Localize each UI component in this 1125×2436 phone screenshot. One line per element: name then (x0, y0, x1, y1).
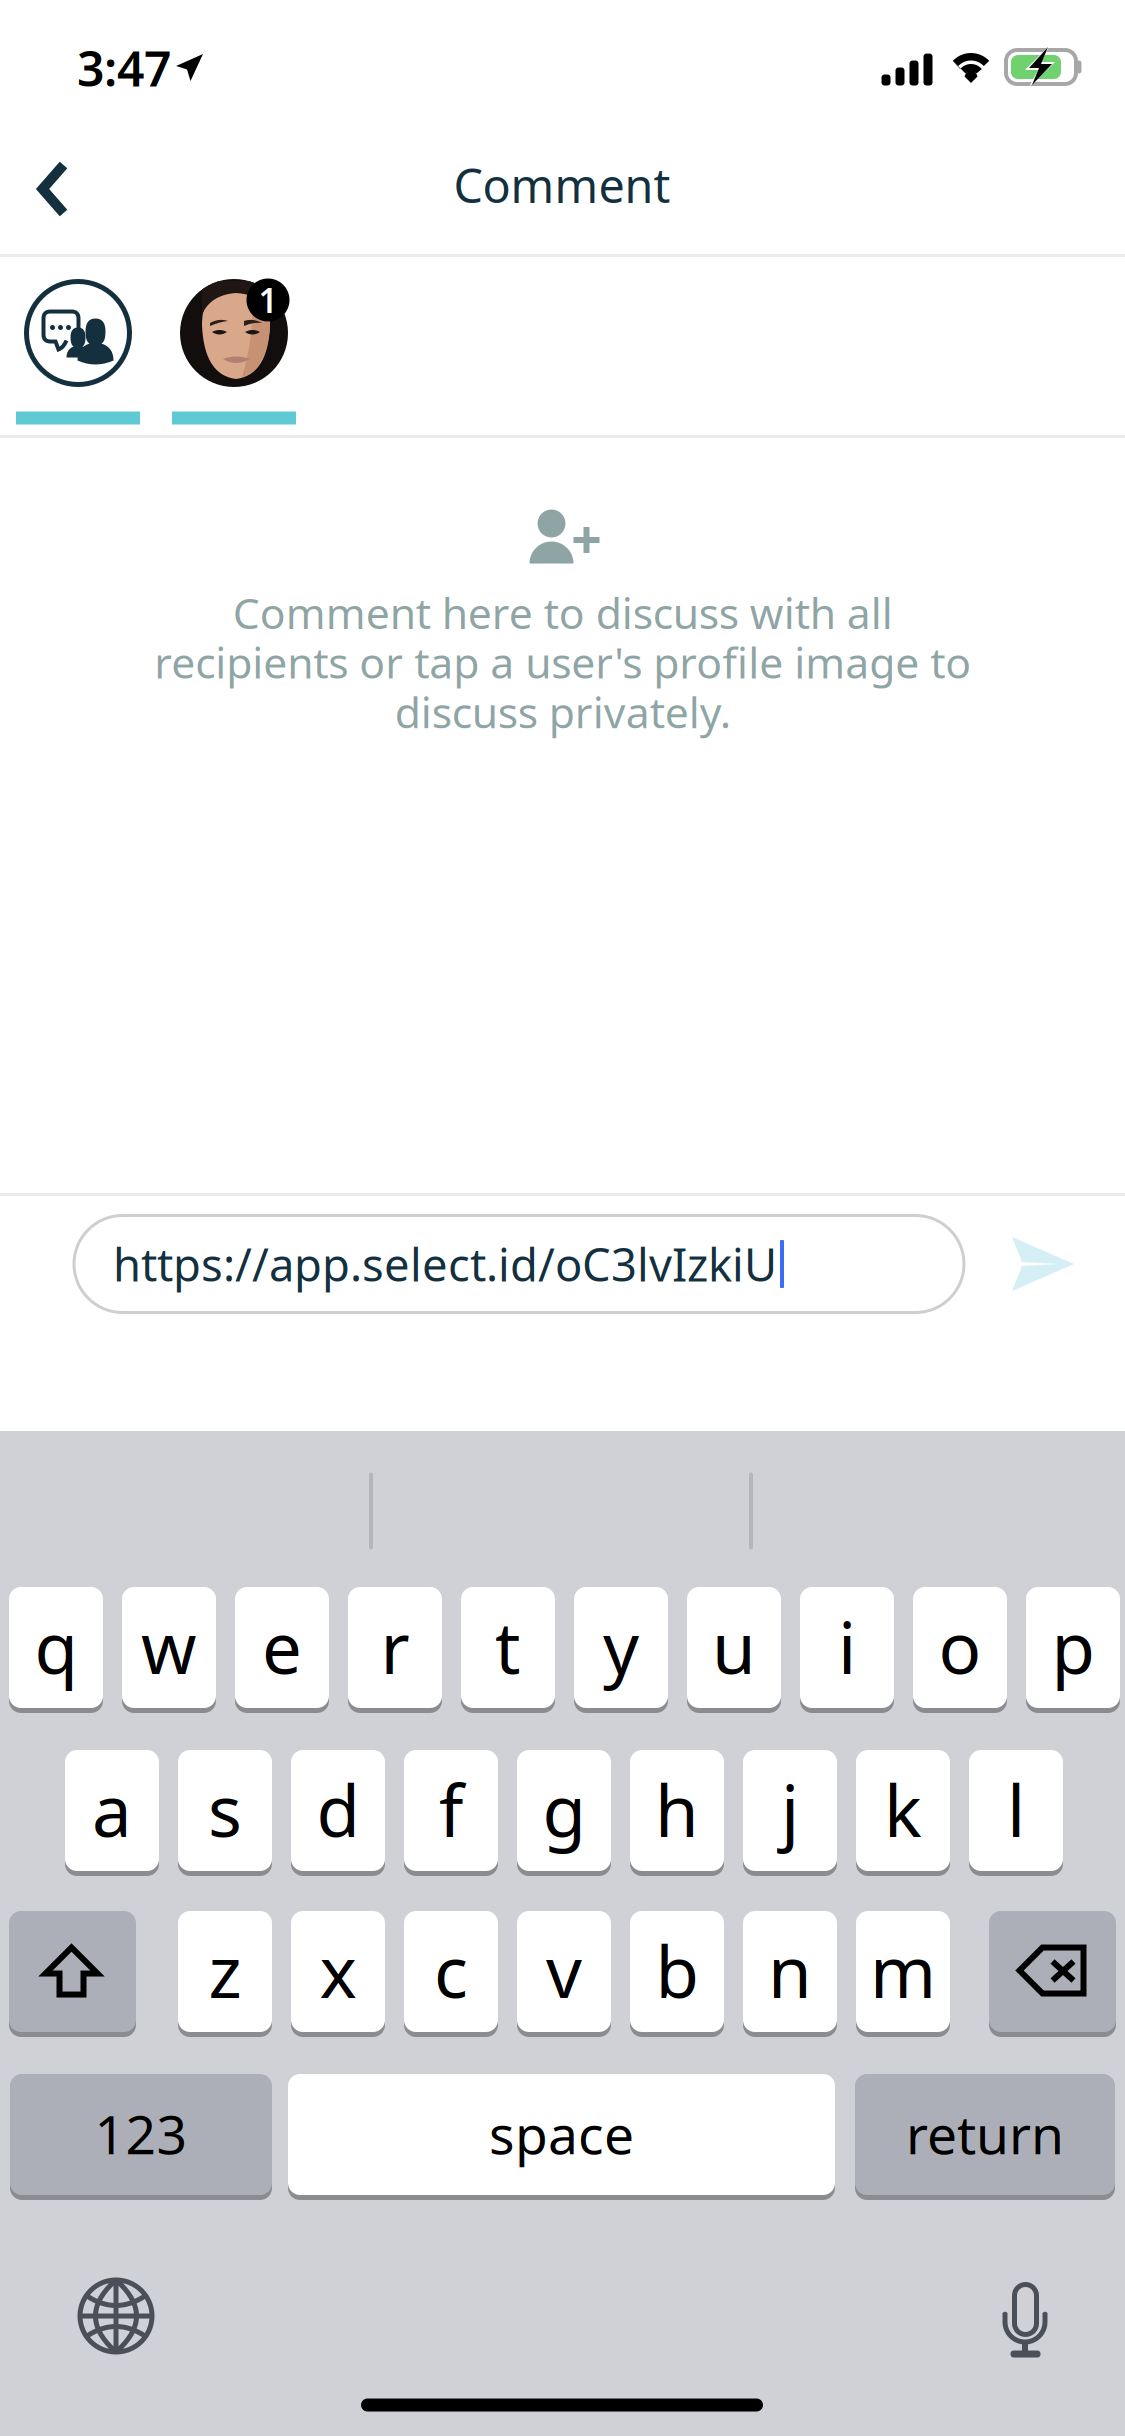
staticText: r (380, 1600, 409, 1693)
button[interactable]: t (461, 1587, 555, 1713)
button[interactable]: y (574, 1587, 668, 1713)
staticText: b (655, 1924, 698, 2017)
staticText: j (781, 1763, 799, 1856)
button[interactable]: https://app.select.id/oC3lvIzkiU (74, 1215, 964, 1312)
button[interactable]: h (630, 1750, 724, 1876)
staticText: u (712, 1600, 756, 1693)
staticText: e (262, 1600, 302, 1693)
button[interactable]: n (743, 1911, 837, 2037)
staticText: k (884, 1763, 922, 1856)
button[interactable]: d (291, 1750, 385, 1876)
button[interactable]: f (404, 1750, 498, 1876)
button[interactable]: Dictate (960, 2255, 1090, 2385)
button[interactable]: j (743, 1750, 837, 1876)
staticText: l (1007, 1763, 1025, 1856)
staticText: 123 (94, 2098, 187, 2169)
button[interactable]: l (969, 1750, 1063, 1876)
staticText: recipients or tap a user's profile image… (154, 634, 971, 690)
staticText: o (938, 1600, 981, 1693)
staticText: v (546, 1924, 582, 2017)
button[interactable]: q (9, 1587, 103, 1713)
button[interactable]: space (288, 2074, 835, 2200)
button[interactable]: e (235, 1587, 329, 1713)
staticText: return (906, 2098, 1064, 2169)
button[interactable]: a (65, 1750, 159, 1876)
staticText: a (92, 1763, 132, 1856)
staticText: h (655, 1763, 699, 1856)
button[interactable]: x (291, 1911, 385, 2037)
staticText: t (495, 1600, 521, 1693)
staticText: m (870, 1924, 936, 2017)
staticText: s (208, 1763, 242, 1856)
staticText: g (542, 1763, 585, 1856)
button[interactable]: o (913, 1587, 1007, 1713)
button[interactable]: r (348, 1587, 442, 1713)
staticText: z (208, 1924, 241, 2017)
button[interactable]: Next keyboard (51, 2251, 181, 2381)
staticText: f (439, 1763, 463, 1856)
button[interactable]: Back (0, 129, 113, 249)
staticText: n (768, 1924, 812, 2017)
button[interactable]: p (1026, 1587, 1120, 1713)
staticText: y (603, 1600, 639, 1693)
button[interactable]: k (856, 1750, 950, 1876)
button[interactable]: Everyone (7, 262, 149, 404)
staticText: d (316, 1763, 359, 1856)
button[interactable]: u (687, 1587, 781, 1713)
button[interactable]: z (178, 1911, 272, 2037)
button[interactable]: g (517, 1750, 611, 1876)
staticText: discuss privately. (394, 683, 730, 740)
staticText: 3:47 (77, 36, 171, 100)
staticText: Comment here to discuss with all (232, 584, 892, 641)
staticText: Comment (453, 154, 670, 216)
staticText: https://app.select.id/oC3lvIzkiU (113, 1234, 777, 1294)
staticText: w (141, 1600, 197, 1693)
button[interactable]: 123 (10, 2074, 272, 2200)
button[interactable]: i (800, 1587, 894, 1713)
button[interactable]: v (517, 1911, 611, 2037)
button[interactable]: return (855, 2074, 1115, 2200)
staticText: x (319, 1924, 356, 2017)
staticText: q (34, 1600, 77, 1693)
button[interactable]: Delete (989, 1911, 1116, 2037)
staticText: space (489, 2098, 634, 2169)
button[interactable]: Shift (9, 1911, 136, 2037)
button[interactable]: Send (988, 1209, 1098, 1319)
button[interactable]: s (178, 1750, 272, 1876)
staticText: p (1051, 1600, 1094, 1693)
button[interactable]: Recipient (180, 276, 322, 418)
button[interactable]: m (856, 1911, 950, 2037)
button[interactable]: c (404, 1911, 498, 2037)
staticText: 1 (258, 278, 277, 322)
button[interactable]: w (122, 1587, 216, 1713)
staticText: c (434, 1924, 468, 2017)
button[interactable]: b (630, 1911, 724, 2037)
staticText: i (838, 1600, 856, 1693)
